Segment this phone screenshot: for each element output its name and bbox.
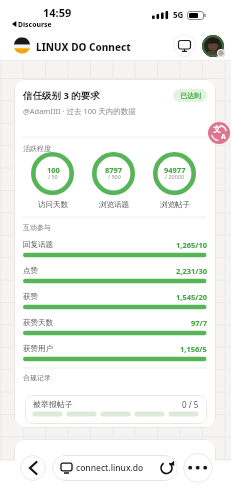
staticText: 已达到 [180,91,201,100]
button[interactable] [202,35,224,57]
staticText: 1,545/20 [176,292,207,302]
staticText: 合规记录 [23,373,51,382]
staticText: 活跃程度 [23,144,51,153]
staticText: / 50 [48,173,58,180]
staticText: 14:59 [43,5,72,20]
staticText: 获赞用户 [23,344,53,353]
button[interactable] [183,453,213,483]
staticText: 回复话题 [23,240,53,249]
staticText: 被举报帖子 [33,399,73,409]
staticText: 浏览帖子 [160,200,190,209]
staticText: 1,156/5 [180,344,207,354]
staticText: LINUX DO Connect [36,40,131,54]
staticText: 获赞天数 [23,318,53,327]
staticText: 94977 [164,165,186,175]
staticText: / 500 [108,173,121,180]
staticText: 点赞 [23,266,38,275]
staticText: @AdamIIII · 过去 100 天内的数据 [23,106,136,116]
button[interactable] [173,34,196,57]
staticText: 2,231/30 [176,266,207,276]
staticText: 互动参与 [23,223,51,232]
staticText: connect.linux.do [76,462,144,474]
staticText: 8797 [105,165,123,175]
button[interactable]: 已达到 [173,89,207,102]
staticText: A [221,132,226,142]
button[interactable]: connect.linux.do [52,455,178,481]
staticText: 5G [173,9,184,20]
staticText: 0 / 5 [182,399,199,409]
staticText: 1,265/10 [176,240,207,250]
staticText: Discourse [18,20,52,29]
staticText: 文 [213,124,221,134]
staticText: 97/7 [191,318,207,328]
staticText: 访问天数 [38,200,68,209]
staticText: / 20000 [165,173,185,180]
staticText: 信任级别 3 的要求 [23,89,100,102]
staticText: 获赞 [23,292,38,301]
button[interactable] [20,455,46,481]
staticText: 100 [47,165,60,175]
button[interactable]: 文 [208,122,230,144]
staticText: 浏览话题 [99,200,129,209]
